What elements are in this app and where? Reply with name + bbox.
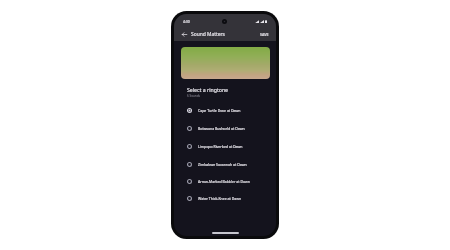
button[interactable]: Cape Turtle Dove at Dawn: [174, 102, 276, 119]
button[interactable]: Limpopo Riverbed at Dawn: [174, 138, 276, 155]
staticText: 6 Sounds: [187, 94, 200, 98]
button[interactable]: [181, 47, 270, 79]
button[interactable]: Back: [181, 31, 188, 38]
button[interactable]: Botswana Bushveld at Dawn: [174, 120, 276, 137]
staticText: Botswana Bushveld at Dawn: [198, 126, 245, 131]
button[interactable]: Zimbabwe Savannah at Dawn: [174, 156, 276, 173]
button[interactable]: Water Thick-Knee at Dawn: [174, 190, 276, 207]
button[interactable]: Arrow-Marked Babbler at Dawn: [174, 173, 276, 190]
staticText: Zimbabwe Savannah at Dawn: [198, 162, 247, 167]
staticText: Sound Matters: [191, 31, 225, 38]
staticText: SAVE: [260, 32, 269, 37]
staticText: Arrow-Marked Babbler at Dawn: [198, 179, 250, 184]
button[interactable]: SAVE: [258, 30, 271, 39]
staticText: Water Thick-Knee at Dawn: [198, 196, 242, 201]
staticText: Select a ringtone: [187, 86, 229, 93]
staticText: 4:30: [183, 19, 190, 24]
staticText: Limpopo Riverbed at Dawn: [198, 144, 243, 149]
staticText: Cape Turtle Dove at Dawn: [198, 108, 241, 113]
